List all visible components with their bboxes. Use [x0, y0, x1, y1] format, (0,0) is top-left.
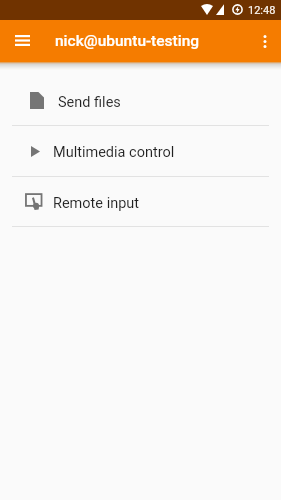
button[interactable]: More options — [248, 21, 281, 62]
button[interactable]: Multimedia control — [0, 126, 281, 176]
button[interactable]: Open navigation drawer — [0, 21, 44, 62]
staticText: Multimedia control — [53, 144, 175, 161]
staticText: nick@ubuntu-testing — [55, 32, 200, 50]
button[interactable]: Remote input — [0, 177, 281, 226]
button[interactable]: Send files — [0, 75, 281, 125]
staticText: 12:48 — [248, 4, 276, 17]
staticText: Send files — [58, 94, 121, 111]
staticText: Remote input — [53, 195, 140, 212]
